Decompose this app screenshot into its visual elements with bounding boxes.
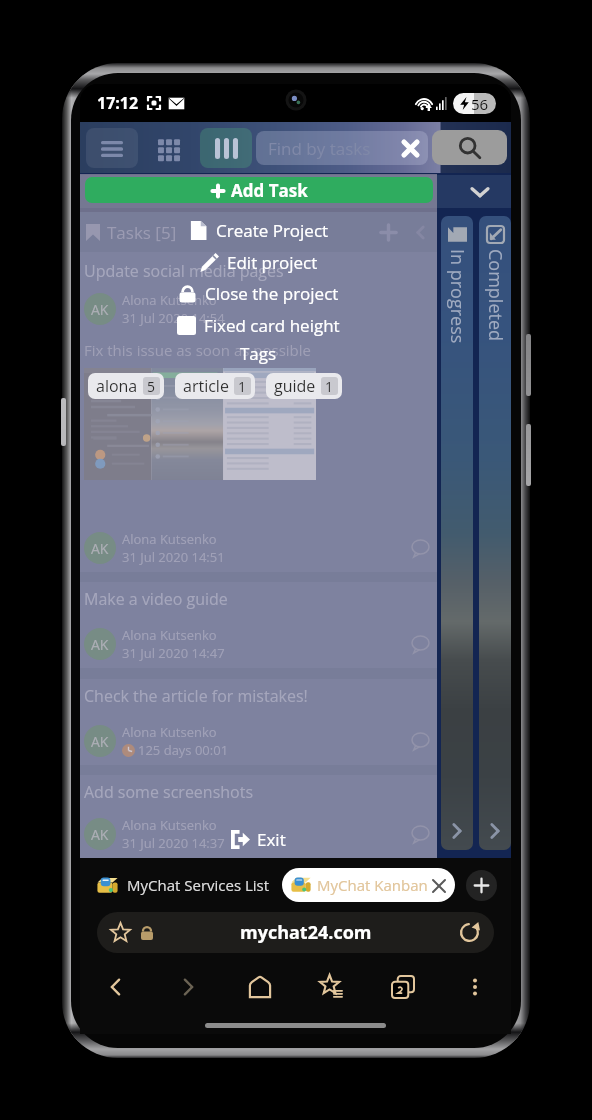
- staticText: Alona Kutsenko: [122, 291, 217, 309]
- staticText: 31 Jul 2020 14:51: [122, 548, 225, 566]
- button[interactable]: Make a video guide: [80, 582, 437, 668]
- staticText: AK: [91, 300, 109, 319]
- staticText: mychat24.com: [240, 920, 372, 945]
- button[interactable]: Edit project: [194, 249, 324, 276]
- staticText: 1: [325, 377, 334, 395]
- staticText: alona: [96, 375, 138, 397]
- staticText: 5: [147, 377, 156, 395]
- staticText: Tasks [5]: [107, 221, 177, 244]
- staticText: Make a video guide: [84, 588, 228, 610]
- staticText: 125 days 00:01: [138, 741, 229, 759]
- button[interactable]: Bookmarks: [308, 964, 354, 1010]
- staticText: AK: [91, 539, 109, 558]
- button[interactable]: Add some screenshots: [80, 775, 437, 858]
- staticText: Fixed card height: [204, 314, 340, 337]
- button[interactable]: Toolbar action: [143, 128, 195, 168]
- staticText: Tags: [240, 342, 277, 365]
- staticText: Alona Kutsenko: [122, 723, 217, 741]
- staticText: Create Project: [216, 219, 329, 242]
- staticText: MyChat Kanban: [317, 875, 428, 895]
- button[interactable]: Fixed card height: [171, 312, 346, 339]
- button[interactable]: Tabs: [380, 964, 426, 1010]
- button[interactable]: Exit: [225, 822, 292, 857]
- staticText: Add some screenshots: [84, 781, 254, 803]
- staticText: Alona Kutsenko: [122, 530, 217, 548]
- button[interactable]: Toolbar action: [86, 128, 138, 168]
- staticText: 31 Jul 2020 14:54: [122, 309, 225, 327]
- staticText: Find by tasks: [268, 137, 371, 160]
- button[interactable]: Find by tasks: [256, 131, 428, 165]
- button[interactable]: Completed: [479, 216, 511, 850]
- button[interactable]: MyChat Services List: [80, 868, 282, 902]
- button[interactable]: Home: [237, 964, 283, 1010]
- button[interactable]: article: [175, 373, 255, 399]
- button[interactable]: Check the article for mistakes!: [80, 679, 437, 765]
- button[interactable]: Update social media pages: [80, 252, 437, 572]
- button[interactable]: In progress: [441, 216, 473, 850]
- staticText: MyChat Services List: [127, 875, 270, 895]
- staticText: 56: [471, 94, 489, 114]
- button[interactable]: mychat24.com: [97, 912, 494, 953]
- staticText: Add Task: [231, 179, 308, 202]
- staticText: 1: [238, 377, 247, 395]
- staticText: In progress: [445, 249, 470, 344]
- staticText: Close the project: [205, 282, 339, 305]
- button[interactable]: Close the project: [172, 280, 345, 307]
- button[interactable]: MyChat Kanban: [282, 868, 455, 902]
- staticText: AK: [91, 635, 109, 654]
- staticText: 17:12: [97, 92, 139, 114]
- staticText: Check the article for mistakes!: [84, 685, 308, 707]
- button[interactable]: More options: [452, 964, 498, 1010]
- button[interactable]: Clear search: [398, 136, 422, 160]
- button[interactable]: Expand: [465, 177, 495, 207]
- button[interactable]: guide: [266, 373, 342, 399]
- button[interactable]: Close tab: [428, 875, 449, 896]
- button[interactable]: Toolbar action: [200, 128, 252, 168]
- button[interactable]: Search: [432, 130, 507, 165]
- staticText: Fix this issue as soon as possible: [84, 340, 311, 360]
- staticText: 31 Jul 2020 14:47: [122, 644, 225, 662]
- button[interactable]: New tab: [466, 870, 497, 901]
- staticText: Update social media pages: [84, 260, 284, 282]
- staticText: Edit project: [227, 251, 318, 274]
- staticText: AK: [91, 825, 109, 844]
- staticText: Alona Kutsenko: [122, 626, 217, 644]
- staticText: guide: [274, 375, 316, 397]
- staticText: Completed: [483, 249, 508, 342]
- button[interactable]: Forward: [165, 964, 211, 1010]
- staticText: 31 Jul 2020 14:37: [122, 834, 225, 852]
- button[interactable]: Add Task: [85, 177, 433, 203]
- staticText: article: [183, 375, 229, 397]
- button[interactable]: alona: [88, 373, 164, 399]
- button[interactable]: Back: [93, 964, 139, 1010]
- staticText: Alona Kutsenko: [122, 816, 217, 834]
- staticText: Exit: [257, 828, 286, 851]
- button[interactable]: Create Project: [183, 217, 335, 244]
- staticText: AK: [91, 732, 109, 751]
